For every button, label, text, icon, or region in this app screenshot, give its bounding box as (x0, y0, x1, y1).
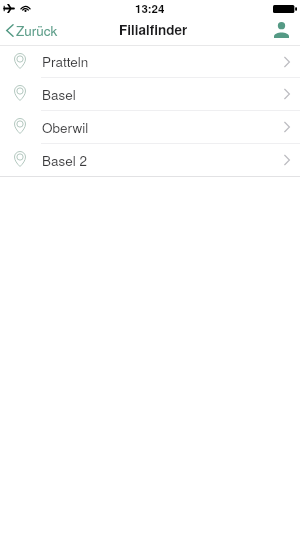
staticText: Pratteln (42, 52, 89, 71)
staticText: Oberwil (42, 118, 89, 137)
staticText: Zurück (16, 21, 58, 40)
button[interactable]: Zurück (0, 21, 66, 40)
button[interactable]: Account (266, 23, 300, 39)
button[interactable]: Pratteln (0, 46, 300, 78)
button[interactable]: Basel (0, 78, 300, 111)
button[interactable]: Oberwil (0, 111, 300, 144)
button[interactable]: Basel 2 (0, 144, 300, 177)
staticText: 13:24 (135, 0, 165, 16)
staticText: Basel 2 (42, 151, 88, 170)
staticText: Basel (42, 85, 76, 104)
staticText: Filialfinder (119, 20, 188, 39)
